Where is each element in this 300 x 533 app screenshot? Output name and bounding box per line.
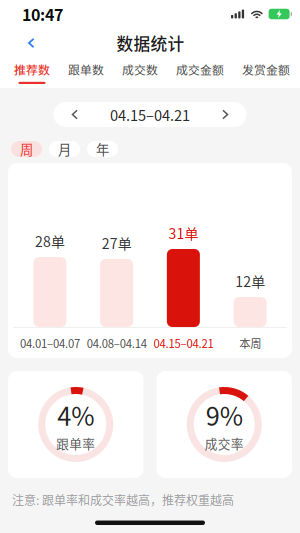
staticText: 28单 xyxy=(35,231,65,251)
button[interactable]: 推荐数 xyxy=(14,58,50,88)
staticText: 跟单数 xyxy=(68,61,104,78)
staticText: 04.01–04.07 xyxy=(20,335,80,351)
staticText: 4% xyxy=(57,396,94,433)
button[interactable]: 成交金额 xyxy=(176,58,224,88)
staticText: 9% xyxy=(206,396,243,433)
button[interactable]: 年 xyxy=(87,141,118,157)
staticText: 成交金额 xyxy=(176,61,224,78)
staticText: 成交数 xyxy=(122,61,158,78)
staticText: 年 xyxy=(96,139,109,159)
staticText: 31单 xyxy=(168,223,198,243)
staticText: 本周 xyxy=(239,335,261,351)
button[interactable]: 月 xyxy=(49,141,80,157)
button[interactable]: 发赏金额 xyxy=(242,58,290,88)
staticText: 跟单率 xyxy=(56,434,95,452)
button[interactable]: 跟单数 xyxy=(68,58,104,88)
staticText: 04.15–04.21 xyxy=(153,335,213,351)
staticText: 10:47 xyxy=(22,2,63,26)
staticText: 12单 xyxy=(235,271,265,291)
button[interactable]: Back xyxy=(11,32,43,54)
staticText: 成交率 xyxy=(205,434,244,452)
staticText: 注意: 跟单率和成交率越高，推荐权重越高 xyxy=(12,491,234,508)
staticText: 周 xyxy=(20,139,33,159)
staticText: 发赏金额 xyxy=(242,61,290,78)
button[interactable]: 周 xyxy=(11,141,42,157)
button[interactable]: Next period xyxy=(218,106,234,122)
staticText: 推荐数 xyxy=(14,61,50,78)
staticText: 月 xyxy=(58,139,71,159)
staticText: 04.08–04.14 xyxy=(87,335,147,351)
button[interactable]: 成交数 xyxy=(122,58,158,88)
staticText: 04.15–04.21 xyxy=(110,104,190,125)
staticText: 数据统计 xyxy=(116,31,184,55)
staticText: 27单 xyxy=(102,233,132,253)
button[interactable]: Previous period xyxy=(65,106,81,122)
